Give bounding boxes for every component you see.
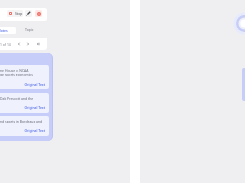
button[interactable]: nd sports in Bordeaux and [0,116,49,136]
staticText: ne House v. NCAA [0,68,29,72]
button[interactable]: ne House v. NCAA [0,65,49,89]
button[interactable]: Last page [35,41,41,47]
staticText: Notes [0,28,8,33]
button[interactable]: Dak Prescott and the [0,93,49,113]
staticText: Topics [25,27,34,34]
staticText: ge sports economics [0,72,33,76]
staticText: Original Text [0,128,45,133]
staticText: nd sports in Bordeaux and [0,119,43,123]
button[interactable]: Topics [25,27,34,34]
button[interactable]: Previous [16,41,22,47]
button[interactable]: Record [35,10,42,17]
button[interactable]: Notes [0,27,16,34]
button[interactable]: Edit [25,10,32,17]
staticText: Original Text [0,105,45,110]
staticText: Dak Prescott and the [0,96,34,100]
button[interactable]: Next [25,41,31,47]
staticText: Original Text [0,82,45,87]
staticText: Stop [15,11,23,16]
button[interactable]: Stop [7,10,23,17]
staticText: 1 of 14 [0,42,11,47]
